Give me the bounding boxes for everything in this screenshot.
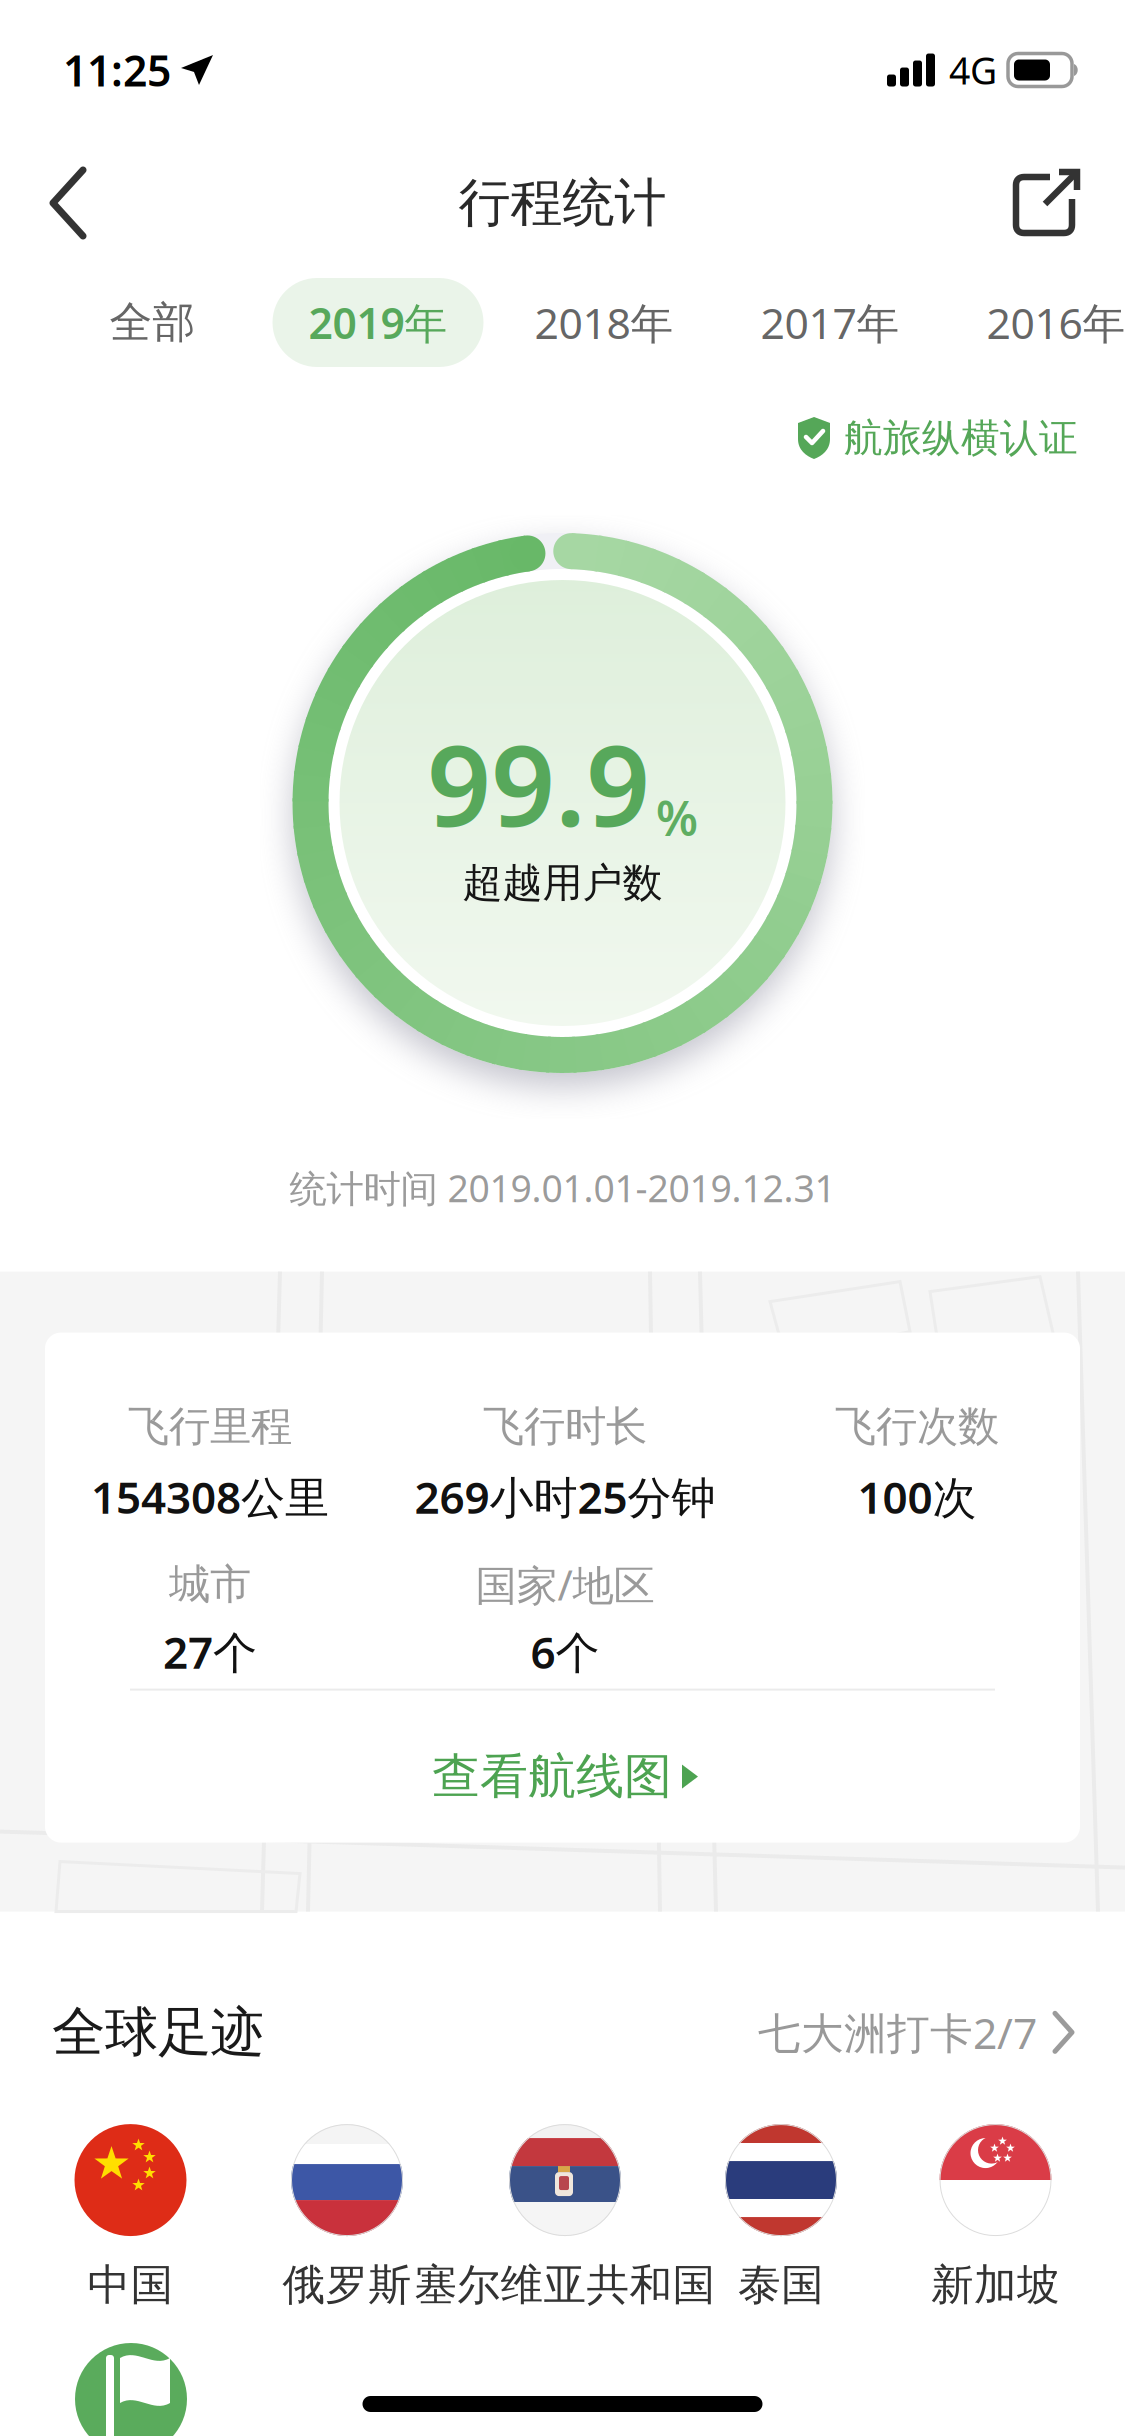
staticText: 4G xyxy=(949,45,997,95)
button[interactable]: 2016年 xyxy=(943,278,1125,367)
staticText: 99.9 xyxy=(427,709,650,857)
staticText: 全球足迹 xyxy=(52,2000,264,2065)
staticText: 11:25 xyxy=(63,42,171,98)
button[interactable]: 全部 xyxy=(40,278,265,367)
staticText: 国家/地区 xyxy=(475,1557,654,1612)
staticText: 2017年 xyxy=(760,294,899,351)
staticText: 全部 xyxy=(109,296,195,349)
staticText: % xyxy=(656,786,698,849)
staticText: 超越用户数 xyxy=(462,858,662,907)
staticText: 27个 xyxy=(163,1622,257,1681)
button[interactable]: 打卡 xyxy=(75,2343,187,2436)
staticText: 新加坡 xyxy=(931,2259,1060,2311)
staticText: 2019年 xyxy=(308,294,447,351)
staticText: 2016年 xyxy=(986,294,1125,351)
staticText: 城市 xyxy=(169,1559,251,1610)
staticText: 飞行次数 xyxy=(835,1401,999,1452)
button[interactable]: 2018年 xyxy=(491,278,717,367)
staticText: 中国 xyxy=(87,2259,173,2311)
button[interactable]: 2019年 xyxy=(272,278,483,367)
button[interactable]: 新加坡 xyxy=(830,2124,1125,2314)
staticText: 俄罗斯 xyxy=(282,2259,411,2311)
staticText: 七大洲打卡2/7 xyxy=(758,2004,1037,2061)
staticText: 行程统计 xyxy=(458,171,666,235)
staticText: 查看航线图 xyxy=(432,1747,672,1806)
button[interactable]: Back xyxy=(0,169,116,237)
staticText: 2018年 xyxy=(534,294,673,351)
staticText: 154308公里 xyxy=(91,1467,329,1526)
staticText: 269小时25分钟 xyxy=(414,1467,715,1526)
staticText: 塞尔维亚共和国 xyxy=(414,2259,715,2311)
button[interactable]: 2017年 xyxy=(717,278,943,367)
staticText: 100次 xyxy=(857,1467,976,1526)
button[interactable]: 七大洲打卡2/7 xyxy=(758,2004,1075,2061)
button[interactable]: 查看航线图 xyxy=(432,1727,698,1827)
staticText: 6个 xyxy=(530,1622,599,1681)
staticText: 航旅纵横认证 xyxy=(844,414,1078,462)
button[interactable]: Share xyxy=(1012,169,1125,237)
button[interactable]: 泰国 xyxy=(616,2124,946,2314)
button[interactable]: 塞尔维亚共和国 xyxy=(400,2124,730,2314)
staticText: 飞行时长 xyxy=(483,1401,647,1452)
button[interactable]: 俄罗斯 xyxy=(182,2124,512,2314)
staticText: 飞行里程 xyxy=(128,1401,292,1452)
staticText: 泰国 xyxy=(738,2259,824,2311)
button[interactable]: 中国 xyxy=(0,2124,295,2314)
staticText: 统计时间 2019.01.01-2019.12.31 xyxy=(289,1163,835,1213)
